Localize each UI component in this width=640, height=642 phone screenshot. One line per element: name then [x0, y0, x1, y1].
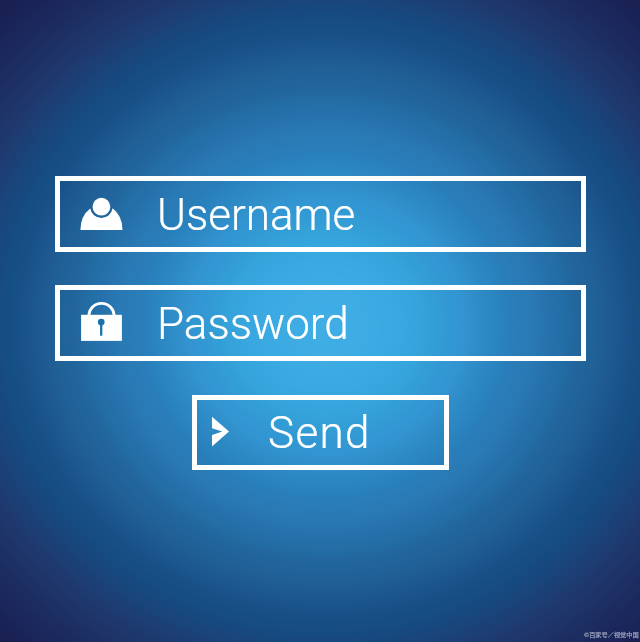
- staticText: Send: [268, 407, 371, 459]
- button[interactable]: User: [55, 176, 586, 252]
- staticText: Username: [157, 189, 356, 241]
- other: Password: [76, 295, 136, 351]
- staticText: ©百家号／视觉中国: [584, 630, 639, 639]
- button[interactable]: Password: [55, 285, 586, 361]
- button[interactable]: Send: [192, 395, 449, 470]
- other: User: [76, 186, 136, 242]
- staticText: Password: [157, 298, 349, 350]
